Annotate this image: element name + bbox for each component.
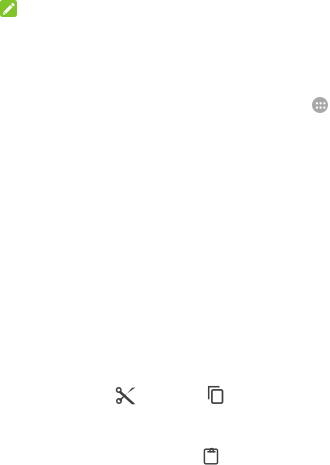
button[interactable]: Copy: [200, 380, 232, 410]
button[interactable]: Compose: [0, 0, 17, 17]
button[interactable]: Cut: [109, 380, 141, 410]
button[interactable]: Paste: [196, 441, 228, 465]
button[interactable]: More options: [312, 97, 328, 113]
